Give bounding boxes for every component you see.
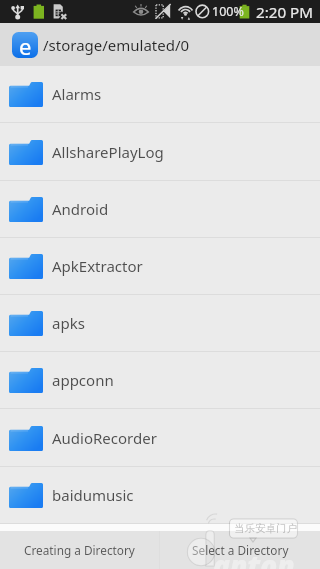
staticText: e — [19, 32, 32, 57]
staticText: Alarms — [52, 84, 102, 104]
staticText: anton — [213, 546, 295, 569]
staticText: baidumusic — [52, 485, 134, 505]
button[interactable]: Android — [0, 181, 320, 237]
staticText: Creating a Directory — [24, 542, 135, 558]
button[interactable]: baidumusic — [0, 467, 320, 523]
staticText: AllsharePlayLog — [52, 142, 164, 162]
staticText: apks — [52, 313, 85, 333]
staticText: 2:20 PM — [256, 2, 314, 23]
button[interactable]: Creating a Directory — [0, 531, 159, 569]
staticText: /storage/emulated/0 — [43, 35, 190, 55]
staticText: 当乐安卓门户 — [234, 522, 297, 535]
staticText: Android — [52, 199, 109, 219]
staticText: Select a Directory — [192, 542, 289, 558]
staticText: appconn — [52, 370, 114, 390]
button[interactable]: appconn — [0, 352, 320, 408]
button[interactable]: App icon — [12, 32, 38, 58]
button[interactable]: Select a Directory — [160, 531, 320, 569]
button[interactable]: AudioRecorder — [0, 410, 320, 466]
button[interactable]: AllsharePlayLog — [0, 124, 320, 180]
staticText: AudioRecorder — [52, 428, 157, 448]
staticText: 100% — [212, 3, 244, 20]
button[interactable]: ApkExtractor — [0, 238, 320, 294]
button[interactable]: apks — [0, 295, 320, 351]
staticText: ApkExtractor — [52, 256, 143, 276]
button[interactable]: Alarms — [0, 66, 320, 122]
